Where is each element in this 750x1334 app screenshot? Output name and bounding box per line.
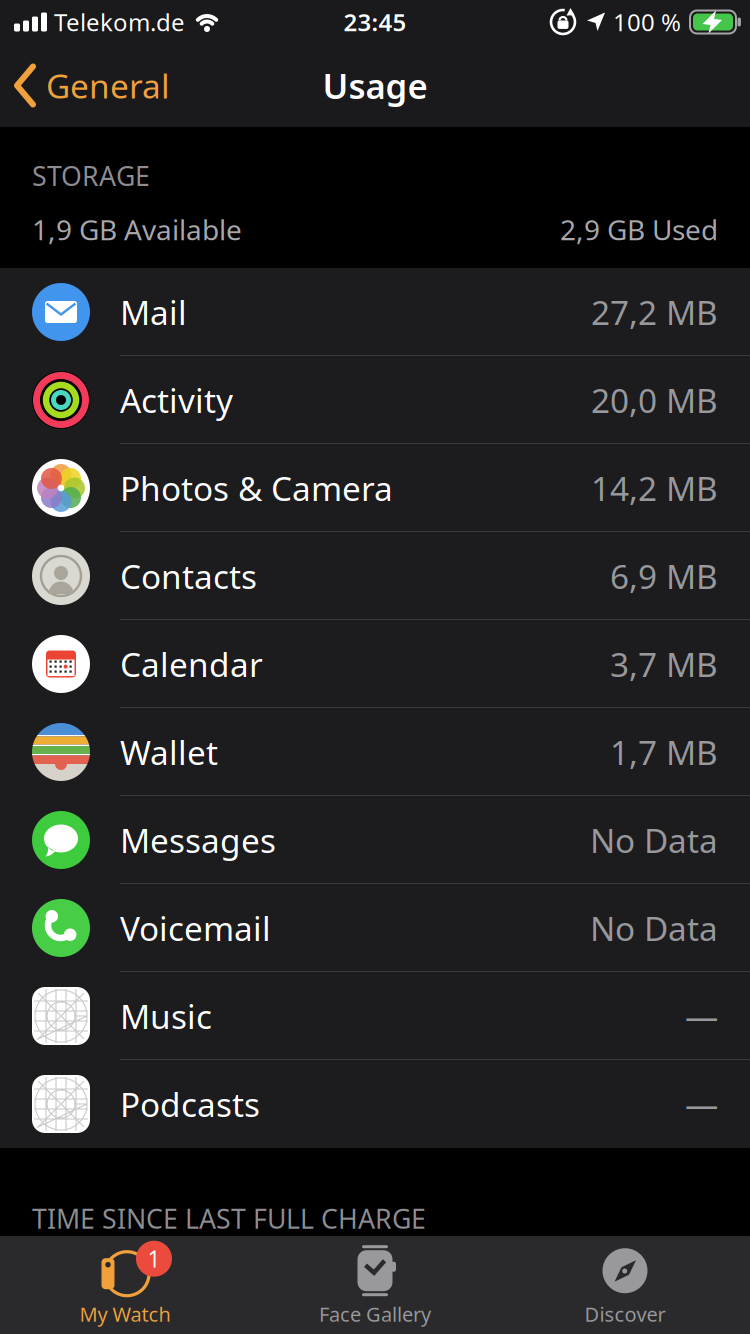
staticText: 14,2 MB	[591, 466, 718, 510]
staticText: —	[685, 994, 718, 1038]
staticText: Photos & Camera	[120, 466, 393, 510]
staticText: No Data	[590, 818, 718, 862]
staticText: Discover	[584, 1301, 665, 1327]
staticText: 1	[147, 1244, 160, 1274]
staticText: Voicemail	[120, 906, 271, 950]
staticText: 2,9 GB Used	[560, 211, 718, 248]
staticText: 1,7 MB	[610, 730, 718, 774]
staticText: My Watch	[79, 1301, 170, 1327]
staticText: Wallet	[120, 730, 218, 774]
staticText: Calendar	[120, 642, 263, 686]
button[interactable]: Face Gallery	[250, 1241, 500, 1327]
staticText: Music	[120, 994, 212, 1038]
staticText: Podcasts	[120, 1082, 260, 1126]
staticText: TIME SINCE LAST FULL CHARGE	[32, 1201, 426, 1236]
staticText: 3,7 MB	[610, 642, 718, 686]
staticText: Messages	[120, 818, 276, 862]
staticText: —	[685, 1082, 718, 1126]
staticText: 1,9 GB Available	[32, 211, 242, 248]
staticText: 20,0 MB	[591, 378, 718, 422]
staticText: Usage	[322, 62, 427, 108]
button[interactable]: General	[0, 63, 170, 108]
staticText: No Data	[590, 906, 718, 950]
staticText: 100 %	[613, 6, 681, 38]
staticText: Mail	[120, 290, 187, 334]
staticText: STORAGE	[32, 158, 150, 193]
staticText: 27,2 MB	[591, 290, 718, 334]
button[interactable]: Discover	[500, 1241, 750, 1327]
staticText: 6,9 MB	[610, 554, 718, 598]
staticText: Activity	[120, 378, 233, 422]
staticText: Face Gallery	[319, 1301, 431, 1327]
staticText: 23:45	[343, 6, 406, 38]
staticText: Telekom.de	[54, 6, 185, 38]
staticText: Contacts	[120, 554, 257, 598]
button[interactable]: 1	[0, 1241, 250, 1327]
staticText: General	[46, 63, 170, 108]
